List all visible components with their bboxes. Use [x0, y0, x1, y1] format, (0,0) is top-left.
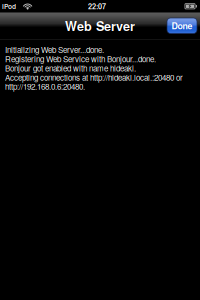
staticText: iPod: [2, 1, 16, 11]
staticText: Web Server: [65, 17, 135, 35]
staticText: Done: [171, 19, 192, 32]
staticText: Registering Web Service with Bonjour...d…: [5, 53, 156, 65]
button[interactable]: Done: [167, 18, 197, 33]
staticText: Bonjour got enabled with name hideaki.: [5, 62, 136, 74]
staticText: 22:07: [88, 1, 106, 11]
staticText: Initializing Web Server...done.: [5, 44, 104, 55]
staticText: http://192.168.0.6:20480.: [5, 81, 85, 92]
staticText: Accepting connections at http://hideaki.…: [5, 71, 183, 83]
